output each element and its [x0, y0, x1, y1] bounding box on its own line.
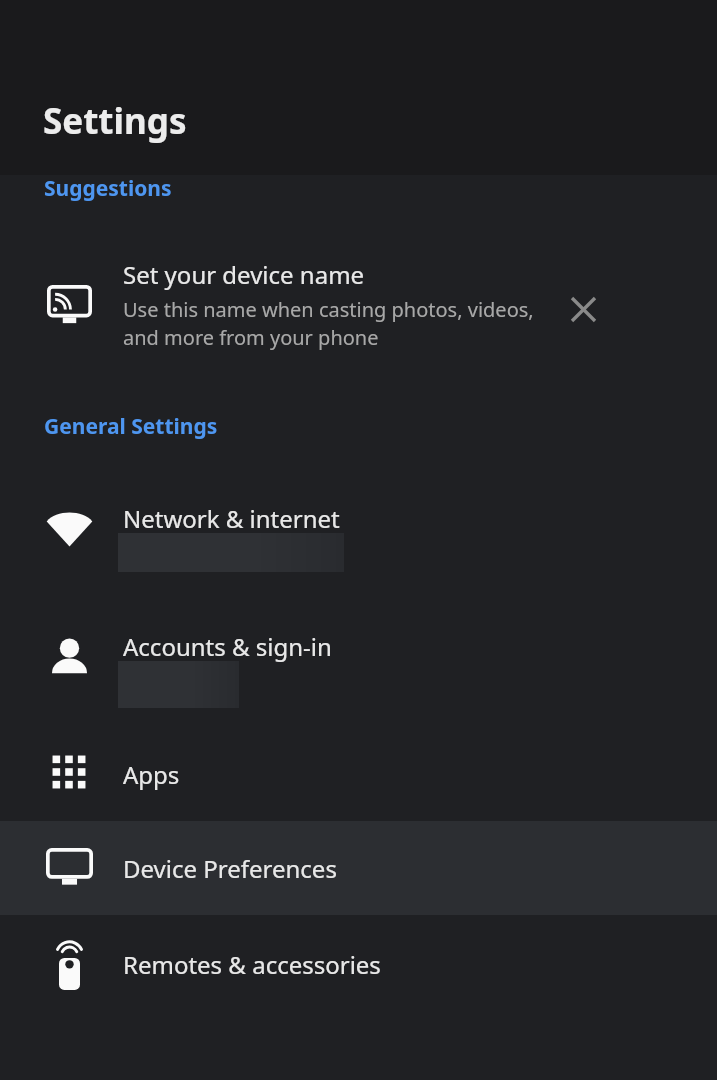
staticText: Settings [43, 97, 187, 145]
staticText: Accounts & sign-in [123, 630, 332, 663]
staticText: Apps [123, 758, 180, 791]
staticText: Use this name when casting photos, video… [123, 296, 534, 351]
staticText: General Settings [44, 412, 218, 441]
button[interactable]: Device Preferences [0, 821, 717, 915]
staticText: Device Preferences [123, 852, 337, 885]
staticText: Network & internet [123, 502, 340, 535]
staticText: Suggestions [44, 174, 172, 203]
button[interactable]: Apps [0, 725, 717, 821]
button[interactable]: Remotes & accessories [0, 915, 717, 1013]
staticText: Remotes & accessories [123, 948, 381, 981]
button[interactable]: Accounts & sign-in [0, 618, 717, 715]
staticText: Set your device name [123, 258, 365, 291]
button[interactable]: Dismiss suggestion [556, 282, 610, 336]
button[interactable]: Network & internet [0, 490, 717, 587]
button[interactable]: Set your device name [0, 235, 717, 380]
